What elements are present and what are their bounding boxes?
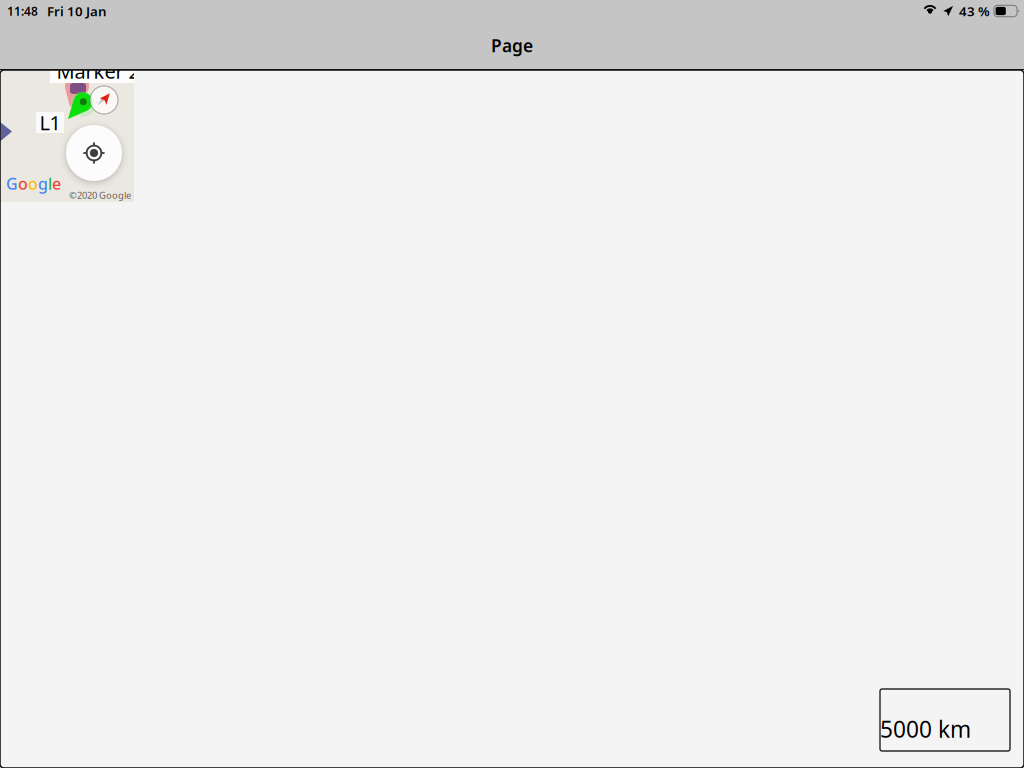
- staticText: g: [38, 173, 48, 194]
- staticText: 11:48: [7, 3, 38, 19]
- button[interactable]: My location: [66, 125, 122, 181]
- button[interactable]: Compass — reset map orientation to north: [90, 86, 118, 114]
- staticText: Fri 10 Jan: [47, 2, 107, 20]
- staticText: o: [28, 173, 38, 194]
- staticText: l: [48, 173, 52, 194]
- staticText: e: [52, 173, 61, 194]
- staticText: o: [18, 173, 28, 194]
- staticText: Marker 2: [56, 58, 139, 84]
- button[interactable]: Google: [6, 173, 61, 194]
- staticText: 5000 km: [880, 714, 971, 744]
- staticText: 43 %: [959, 2, 990, 20]
- button[interactable]: Marker 2: [50, 59, 146, 83]
- staticText: ©2020 Google: [69, 189, 131, 201]
- staticText: Page: [491, 34, 533, 57]
- staticText: G: [6, 173, 18, 194]
- button[interactable]: L1: [36, 112, 64, 133]
- staticText: L1: [39, 109, 60, 136]
